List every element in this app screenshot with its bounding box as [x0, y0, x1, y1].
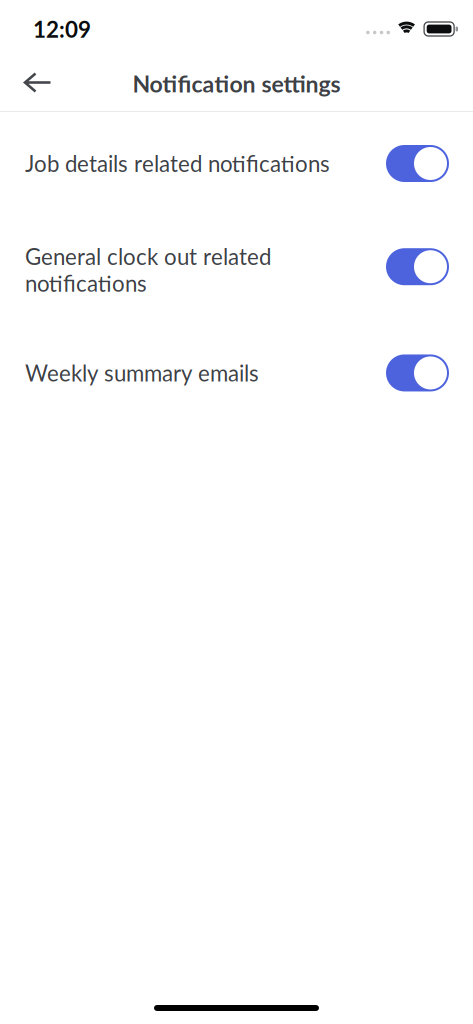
staticText: General clock out related notifications [25, 243, 271, 296]
staticText: Job details related notifications [25, 150, 330, 177]
staticText: Weekly summary emails [25, 360, 259, 386]
button[interactable]: Back [0, 58, 63, 106]
button[interactable]: General clock out related notifications [386, 248, 449, 285]
staticText: Notification settings [132, 70, 340, 97]
staticText: 12:09 [33, 16, 91, 42]
button[interactable]: Job details related notifications [386, 145, 449, 182]
button[interactable]: Weekly summary emails [386, 354, 449, 391]
